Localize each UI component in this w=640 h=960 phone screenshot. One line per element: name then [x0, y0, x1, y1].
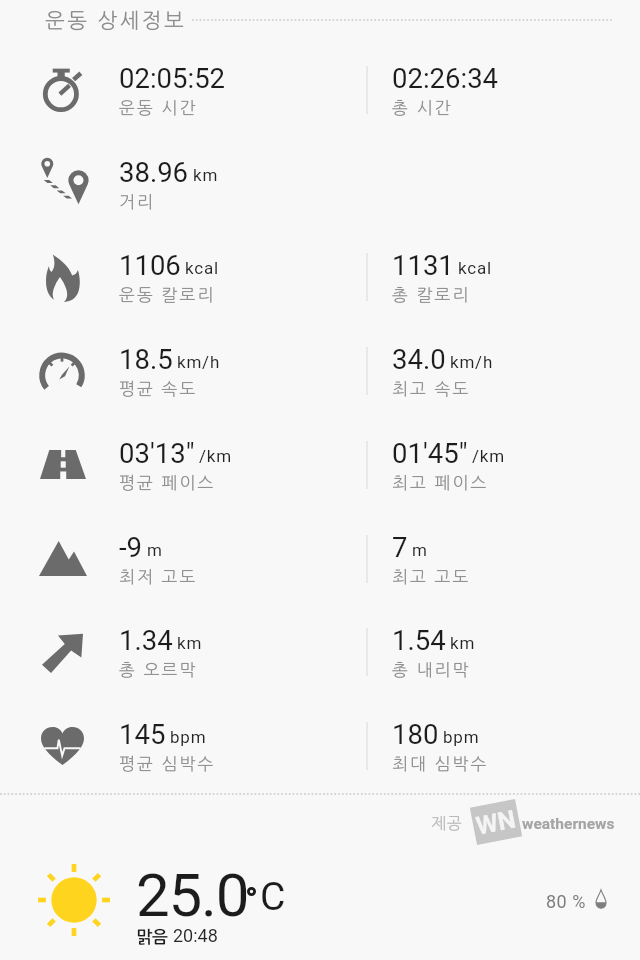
staticText: m	[412, 540, 428, 560]
staticText: 20:48	[173, 925, 218, 946]
staticText: 운동 칼로리	[119, 286, 216, 303]
staticText: bpm	[443, 727, 480, 747]
staticText: 02:26:34	[392, 62, 499, 94]
staticText: 18.5	[119, 343, 173, 375]
staticText: 80 %	[546, 891, 586, 912]
staticText: 1.54	[392, 624, 446, 656]
staticText: 1.34	[119, 624, 173, 656]
staticText: km/h	[177, 352, 221, 372]
button[interactable]: Heart rate	[0, 712, 640, 806]
other: Altitude	[39, 541, 87, 576]
staticText: 운동 상세정보	[45, 10, 187, 31]
other: Heart rate	[41, 727, 84, 765]
other: Ascent	[42, 632, 83, 673]
staticText: 145	[119, 718, 166, 750]
staticText: 7	[392, 531, 408, 563]
staticText: 25.0	[136, 860, 249, 930]
staticText: km	[177, 633, 203, 653]
staticText: kcal	[185, 258, 219, 278]
staticText: 총 내리막	[392, 661, 471, 678]
other: Pace	[40, 450, 86, 479]
staticText: 1106	[119, 249, 181, 281]
other: Distance	[40, 153, 92, 205]
staticText: -9	[119, 531, 143, 563]
button[interactable]: Distance	[0, 150, 640, 244]
staticText: kcal	[458, 258, 492, 278]
button[interactable]: Altitude	[0, 525, 640, 619]
staticText: 01'45"	[392, 437, 468, 469]
staticText: km	[193, 165, 219, 185]
staticText: 최저 고도	[119, 568, 198, 585]
other: Sunny	[38, 864, 110, 936]
staticText: m	[147, 540, 163, 560]
button[interactable]: Exercise time	[0, 56, 640, 150]
staticText: 평균 페이스	[119, 474, 216, 491]
staticText: 38.96	[119, 156, 189, 188]
staticText: 총 오르막	[119, 661, 198, 678]
staticText: 최고 속도	[392, 380, 471, 397]
staticText: 거리	[119, 193, 155, 210]
staticText: 180	[392, 718, 439, 750]
staticText: 총 칼로리	[392, 286, 471, 303]
button[interactable]: Calories	[0, 243, 640, 337]
button[interactable]: Pace	[0, 431, 640, 525]
button[interactable]: Ascent	[0, 618, 640, 712]
button[interactable]: Speed	[0, 337, 640, 431]
staticText: 03'13"	[119, 437, 195, 469]
staticText: 최고 페이스	[392, 474, 489, 491]
staticText: /km	[472, 446, 505, 466]
staticText: weathernews	[522, 815, 615, 833]
staticText: 제공	[431, 815, 463, 831]
staticText: 최대 심박수	[392, 755, 489, 772]
staticText: km	[450, 633, 476, 653]
staticText: 최고 고도	[392, 568, 471, 585]
staticText: WN	[474, 804, 518, 840]
staticText: 02:05:52	[119, 62, 226, 94]
staticText: 운동 시간	[119, 99, 198, 116]
staticText: 맑음	[136, 929, 168, 946]
staticText: 1131	[392, 249, 454, 281]
other: Exercise time	[40, 66, 88, 114]
staticText: 평균 속도	[119, 380, 198, 397]
staticText: 34.0	[392, 343, 446, 375]
other: Calories	[46, 252, 80, 302]
staticText: 총 시간	[392, 99, 453, 116]
other: Humidity	[595, 889, 607, 909]
staticText: km/h	[450, 352, 494, 372]
staticText: bpm	[170, 727, 207, 747]
staticText: /km	[199, 446, 232, 466]
staticText: C	[260, 874, 286, 920]
staticText: 평균 심박수	[119, 755, 216, 772]
other: Speed	[39, 350, 85, 392]
